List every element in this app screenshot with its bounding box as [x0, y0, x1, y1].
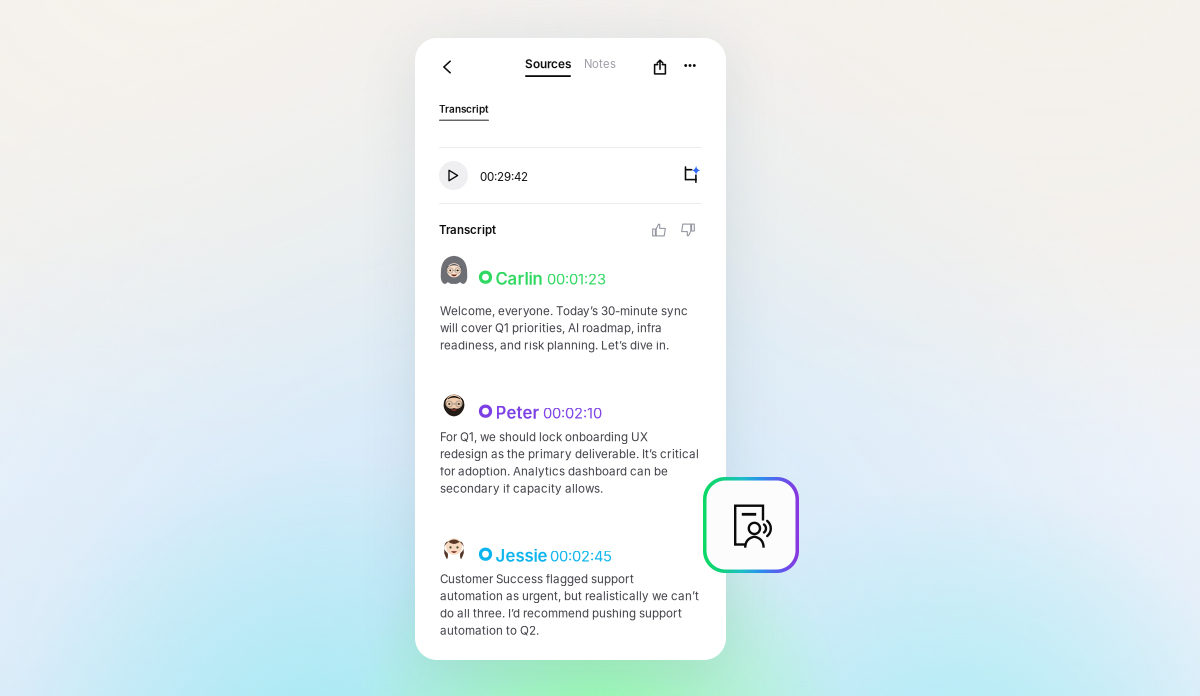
staticText: Carlin — [495, 269, 542, 289]
staticText: For Q1, we should lock onboarding UX — [440, 430, 648, 444]
button[interactable]: Sources — [525, 57, 571, 79]
staticText: Jessie — [495, 546, 547, 566]
staticText: secondary if capacity allows. — [440, 481, 603, 495]
button[interactable]: More options — [679, 55, 701, 75]
button[interactable]: Share — [649, 56, 671, 78]
button[interactable]: Create clip — [684, 166, 700, 183]
staticText: Transcript — [439, 103, 489, 115]
staticText: Notes — [584, 57, 616, 71]
staticText: will cover Q1 priorities, AI roadmap, in… — [440, 321, 662, 335]
staticText: 00:01:23 — [547, 270, 606, 288]
staticText: 00:02:10 — [543, 404, 602, 422]
button[interactable]: Bad response — [681, 223, 695, 237]
staticText: automation as urgent, but realistically … — [440, 589, 699, 603]
staticText: readiness, and risk planning. Let’s dive… — [440, 338, 669, 352]
button[interactable]: Transcript — [439, 103, 489, 123]
button[interactable]: Back — [436, 56, 458, 78]
staticText: for adoption. Analytics dashboard can be — [440, 464, 668, 478]
staticText: 00:02:45 — [550, 547, 612, 565]
staticText: Sources — [525, 57, 571, 71]
staticText: Transcript — [439, 223, 496, 237]
staticText: 00:29:42 — [480, 170, 528, 184]
button[interactable]: Good response — [652, 223, 666, 237]
staticText: Customer Success flagged support — [440, 572, 634, 586]
staticText: redesign as the primary deliverable. It’… — [440, 447, 699, 461]
staticText: automation to Q2. — [440, 623, 539, 637]
button[interactable]: Notes — [584, 57, 614, 71]
button[interactable]: Play — [439, 161, 468, 190]
staticText: Peter — [495, 403, 539, 423]
staticText: do all three. I’d recommend pushing supp… — [440, 606, 682, 620]
staticText: Welcome, everyone. Today’s 30-minute syn… — [440, 304, 688, 318]
